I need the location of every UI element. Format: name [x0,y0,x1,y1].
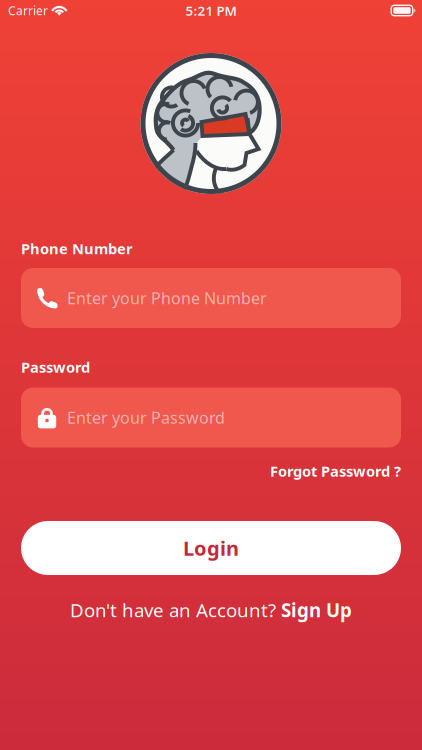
button[interactable]: Login [21,521,401,575]
staticText: Sign Up [281,598,352,622]
button[interactable]: Enter your Phone Number [21,268,401,328]
staticText: Enter your Phone Number [67,287,267,309]
staticText: Enter your Password [67,407,225,428]
staticText: 5:21 PM [185,2,236,19]
staticText: Carrier [8,2,48,18]
staticText: Forgot Password ? [270,461,401,481]
button[interactable]: Forgot Password ? [21,461,401,481]
button[interactable]: Don't have an Account? [70,598,352,622]
staticText: Password [21,357,90,377]
button[interactable]: Enter your Password [21,387,401,447]
staticText: Don't have an Account? [70,598,281,622]
staticText: Login [183,535,239,561]
staticText: Phone Number [21,239,133,258]
